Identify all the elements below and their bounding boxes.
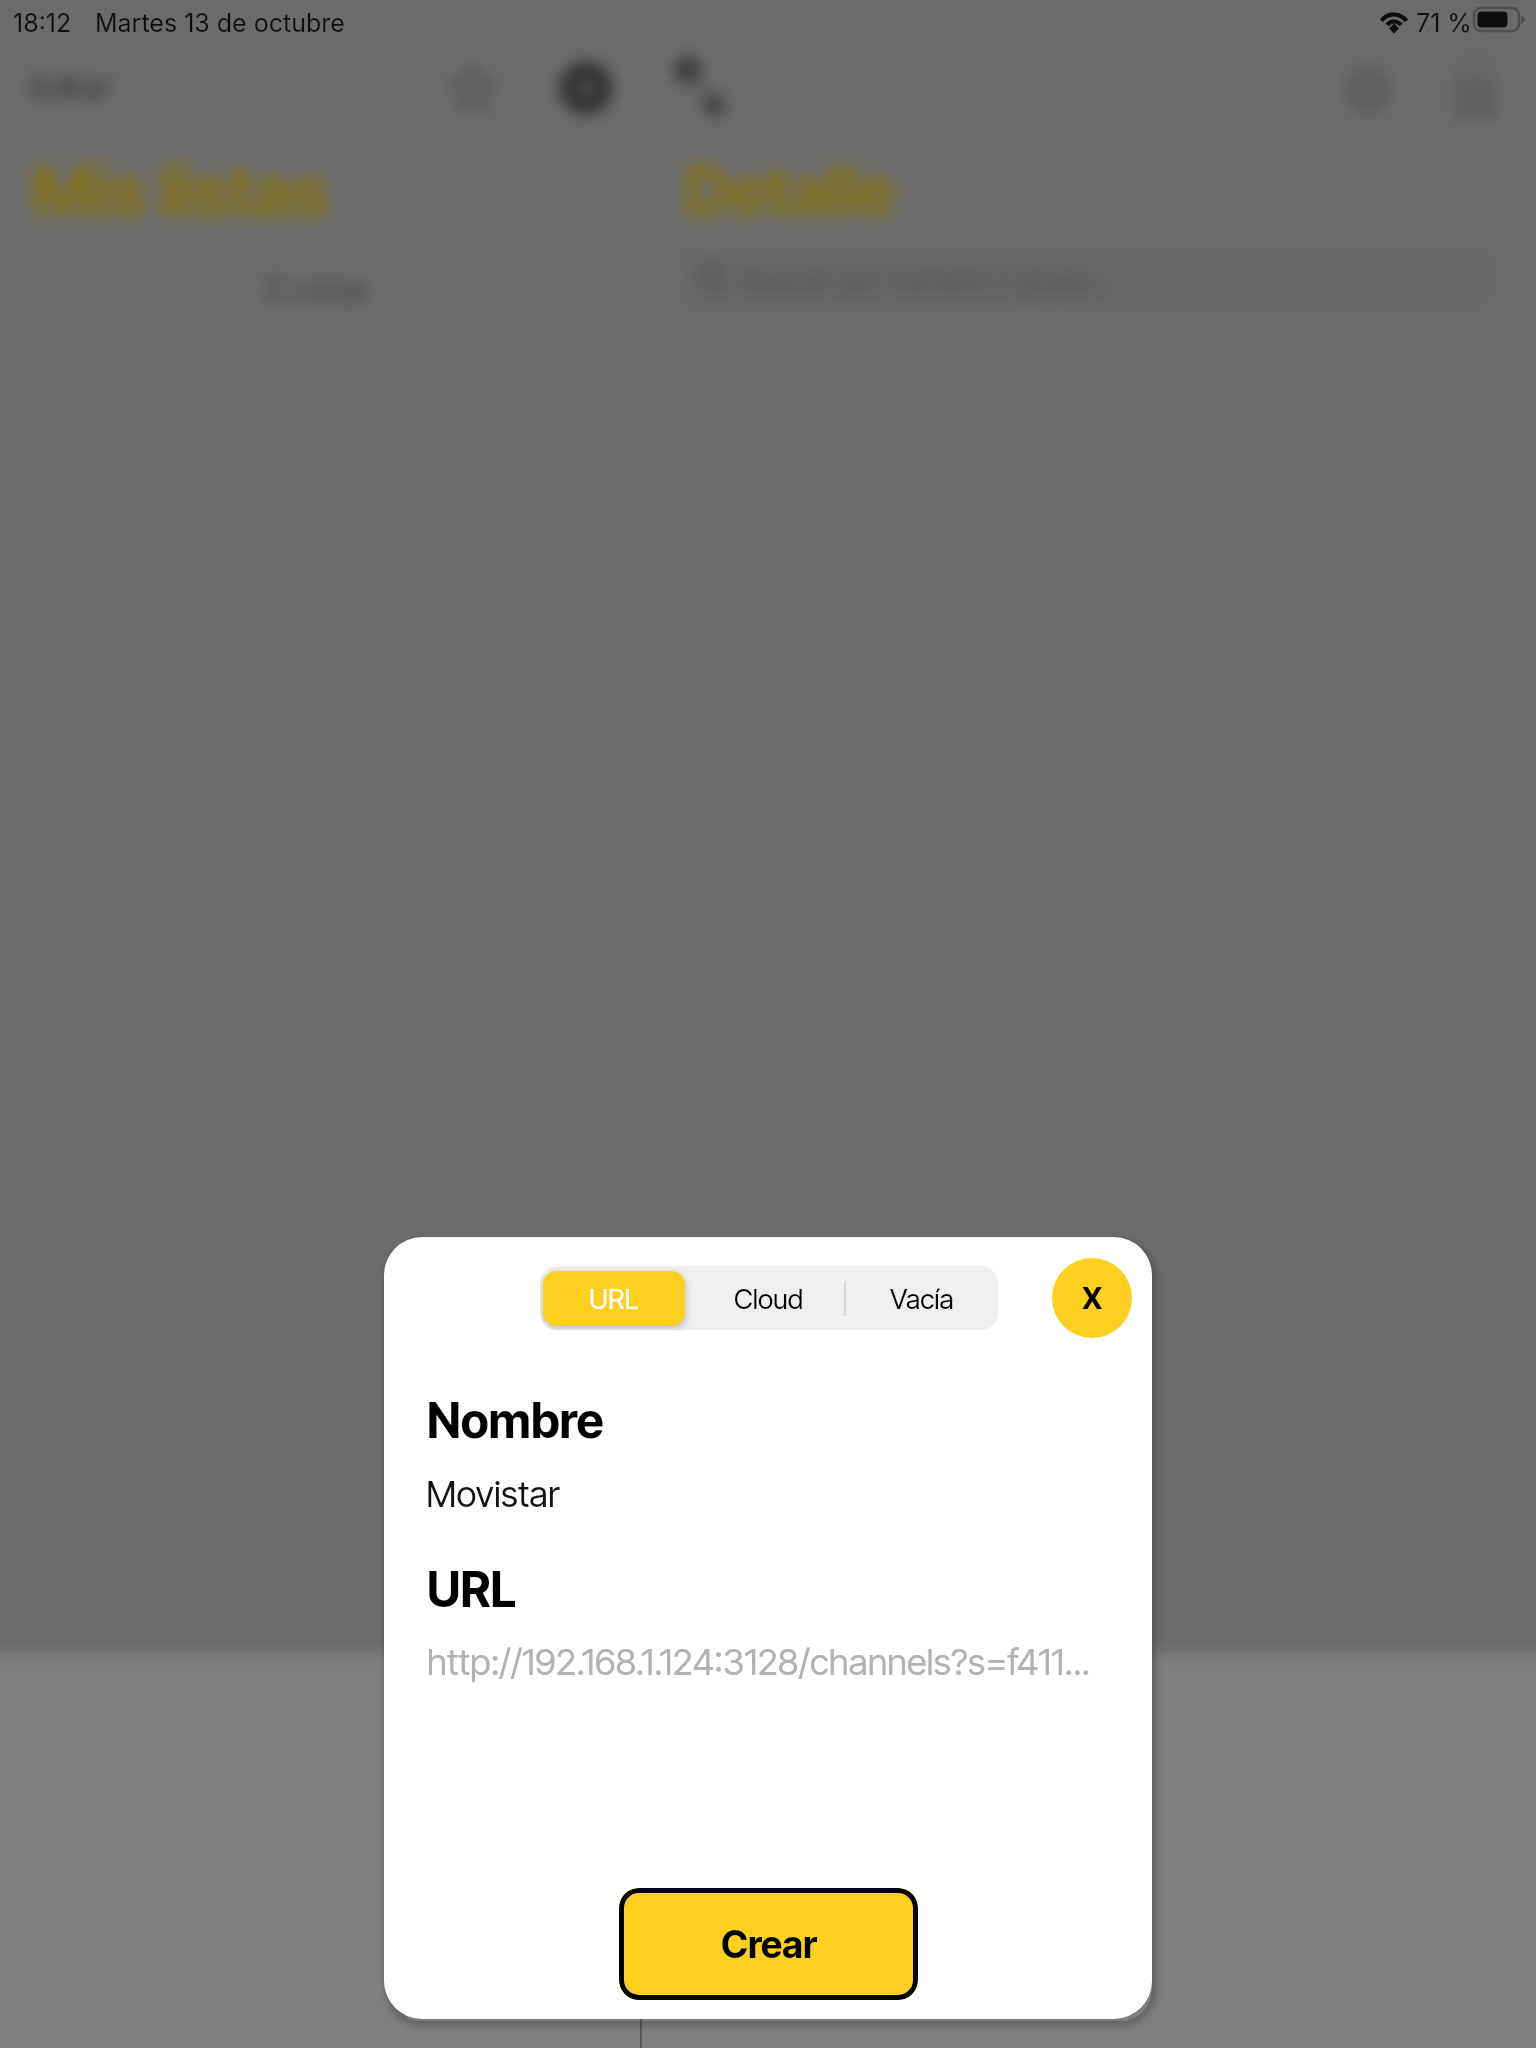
button[interactable]: Crear bbox=[619, 1888, 918, 2000]
staticText: http://192.168.1.124:3128/channels?s=f41… bbox=[427, 1640, 1091, 1684]
staticText: 71 % bbox=[1416, 8, 1472, 38]
button[interactable]: Cloud bbox=[693, 1266, 845, 1330]
staticText: Movistar bbox=[426, 1472, 560, 1516]
staticText: Editar bbox=[30, 67, 112, 107]
staticText: Detalle bbox=[684, 151, 896, 231]
staticText: Crear bbox=[721, 1922, 817, 1967]
staticText: 18:12 bbox=[13, 8, 72, 38]
staticText: Martes 13 de octubre bbox=[95, 8, 345, 38]
staticText: Vacía bbox=[890, 1282, 954, 1315]
staticText: URL bbox=[427, 1560, 517, 1618]
staticText: Nombre bbox=[427, 1391, 604, 1449]
staticText: Cloud bbox=[734, 1282, 804, 1315]
button[interactable]: URL bbox=[543, 1271, 685, 1326]
staticText: URL bbox=[589, 1282, 639, 1315]
staticText: Mis listas bbox=[32, 149, 329, 232]
button[interactable]: Cerrar bbox=[1052, 1258, 1132, 1338]
staticText: X bbox=[1082, 1280, 1103, 1316]
button[interactable]: Vacía bbox=[845, 1266, 998, 1330]
staticText: 0 Listas bbox=[264, 270, 370, 309]
